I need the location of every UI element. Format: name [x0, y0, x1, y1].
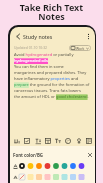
button[interactable]: Background colour 0	[19, 174, 25, 180]
button[interactable]: Text format	[33, 136, 42, 145]
button[interactable]: Background colour 7	[79, 174, 85, 180]
button[interactable]: Text colour 0	[19, 163, 25, 169]
button[interactable]: Checklist	[22, 136, 31, 145]
button[interactable]: Text colour 1	[28, 163, 34, 169]
button[interactable]: Background colour 2	[36, 174, 42, 180]
button[interactable]: More options	[84, 32, 93, 41]
button[interactable]: Text colour 3	[45, 163, 51, 169]
staticText: Study notes	[23, 33, 53, 40]
button[interactable]: Back	[13, 32, 22, 41]
button[interactable]: Background colour 6	[70, 174, 76, 180]
button[interactable]: Insert table	[43, 136, 52, 145]
button[interactable]: Font size	[53, 136, 62, 145]
button[interactable]: Background colour 1	[28, 174, 34, 180]
button[interactable]: Text colour 2	[36, 163, 42, 169]
staticText: Work	[76, 46, 85, 51]
button[interactable]: Background colour 4	[53, 174, 59, 180]
button[interactable]: Text colour 6	[70, 163, 76, 169]
button[interactable]: Text colour 5	[62, 163, 68, 169]
button[interactable]: Text colour 4	[53, 163, 59, 169]
staticText: Updated 01-10 10:32	[14, 45, 48, 50]
button[interactable]: Background colour 3	[45, 174, 51, 180]
staticText: Take Rich Text Notes	[0, 1, 103, 23]
staticText: Font color/BG	[13, 152, 44, 158]
button[interactable]: Background colour 5	[62, 174, 68, 180]
button[interactable]: Undo	[12, 136, 21, 145]
button[interactable]: Attach	[74, 136, 83, 145]
button[interactable]: Work	[69, 45, 91, 51]
button[interactable]: Close	[86, 151, 93, 158]
staticText: Avoid hydrogenated or partially hydrogen…	[14, 52, 92, 100]
button[interactable]: Text colour 7	[79, 163, 85, 169]
button[interactable]: Save	[84, 136, 93, 145]
button[interactable]: Colors	[63, 136, 72, 145]
